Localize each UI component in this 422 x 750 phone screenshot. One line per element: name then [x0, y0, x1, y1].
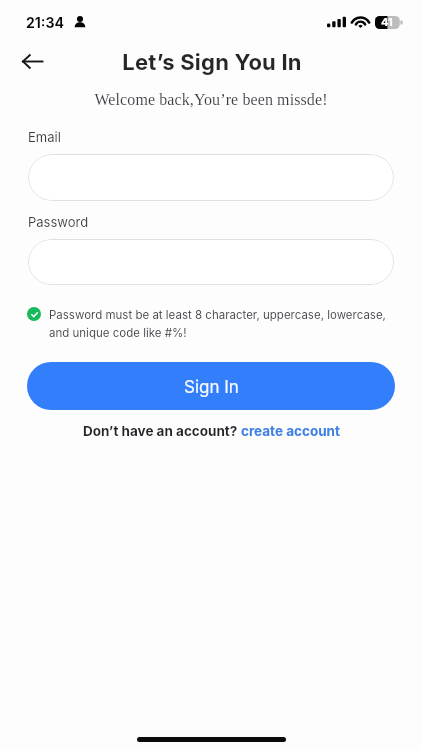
- staticText: create account: [241, 423, 340, 439]
- staticText: Email: [28, 129, 61, 145]
- button[interactable]: Password field: [28, 239, 394, 285]
- button[interactable]: Back: [16, 45, 48, 77]
- staticText: 41: [381, 15, 393, 28]
- button[interactable]: Email field: [28, 154, 394, 201]
- staticText: Password must be at least 8 character, u…: [49, 308, 393, 340]
- staticText: 21:34: [26, 14, 65, 31]
- staticText: Let’s Sign You In: [1, 49, 422, 76]
- staticText: Don’t have an account?: [83, 423, 241, 439]
- staticText: Password: [28, 214, 89, 230]
- staticText: Welcome back,You’re been missde!: [0, 91, 422, 109]
- button[interactable]: create account: [241, 423, 340, 439]
- staticText: Sign In: [184, 377, 239, 398]
- button[interactable]: Sign In: [27, 362, 395, 410]
